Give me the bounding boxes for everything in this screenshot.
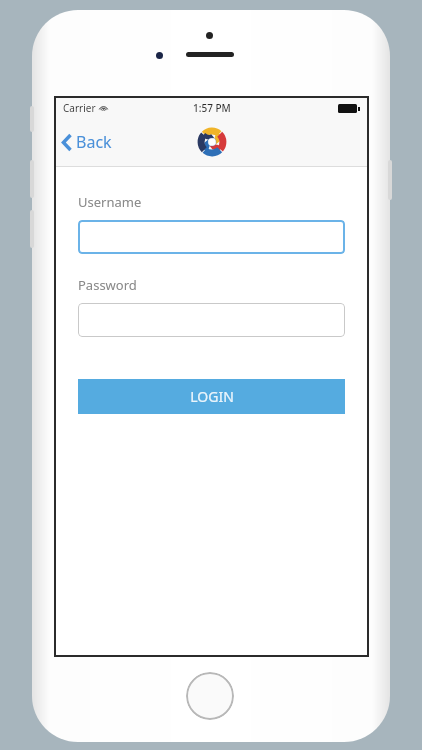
staticText: Username — [78, 193, 142, 211]
other: Home — [186, 672, 234, 720]
button[interactable]: App logo — [197, 127, 227, 157]
staticText: Carrier — [63, 101, 96, 115]
staticText: 1:57 PM — [193, 101, 231, 115]
button[interactable]: Password field — [78, 303, 345, 337]
staticText: LOGIN — [190, 387, 234, 406]
staticText: Password — [78, 276, 137, 294]
button[interactable]: Username field — [78, 220, 345, 254]
button[interactable]: Back — [56, 125, 122, 159]
staticText: Back — [76, 131, 112, 153]
button[interactable]: LOGIN — [78, 379, 345, 414]
